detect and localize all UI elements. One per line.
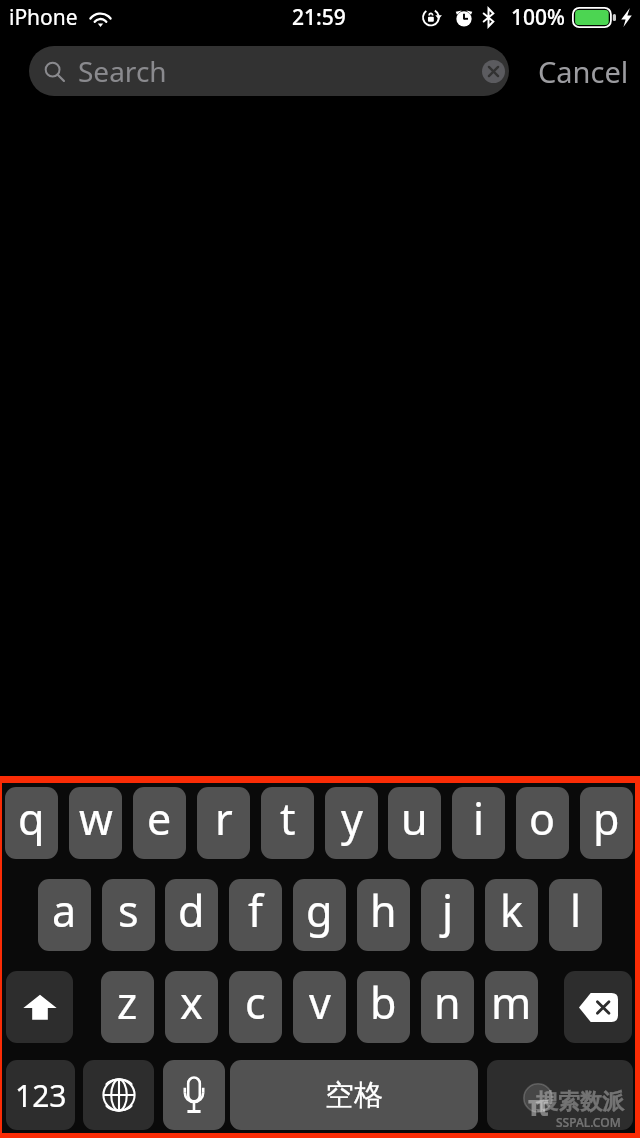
staticText: b [370,973,397,1032]
staticText: Search [78,52,167,90]
button[interactable]: Cancel [538,52,629,91]
staticText: SSPAL.COM [556,1114,621,1130]
staticText: w [79,789,113,848]
staticText: p [593,789,620,848]
button[interactable]: m [485,971,538,1043]
staticText: k [500,881,523,940]
button[interactable]: y [325,787,378,859]
staticText: Cancel [538,52,629,91]
button[interactable]: z [101,971,154,1043]
button[interactable]: 空格 [230,1060,478,1130]
button[interactable]: Shift [6,971,73,1043]
staticText: v [309,973,331,1032]
button[interactable]: s [102,879,155,951]
button[interactable]: Search [487,1060,633,1130]
staticText: z [117,973,138,1032]
staticText: j [442,881,454,940]
button[interactable]: k [485,879,538,951]
button[interactable]: 123 [6,1060,75,1130]
staticText: iPhone [9,3,78,32]
staticText: y [341,789,363,848]
button[interactable]: r [197,787,250,859]
button[interactable]: c [229,971,282,1043]
staticText: 搜索数派 [536,1088,624,1116]
button[interactable]: Clear text [472,50,509,92]
button[interactable]: a [38,879,91,951]
button[interactable]: p [580,787,633,859]
staticText: l [570,881,582,940]
staticText: 21:59 [292,3,346,32]
button[interactable]: Backspace [564,971,632,1043]
staticText: n [434,973,461,1032]
button[interactable]: Dictation [163,1060,225,1130]
button[interactable]: g [293,879,346,951]
staticText: 123 [15,1075,67,1116]
staticText: i [473,789,485,848]
button[interactable]: o [516,787,569,859]
button[interactable]: e [133,787,186,859]
staticText: π [528,1086,549,1124]
button[interactable]: h [357,879,410,951]
button[interactable]: b [357,971,410,1043]
staticText: 空格 [325,1077,383,1114]
staticText: c [245,973,266,1032]
staticText: u [401,789,428,848]
staticText: 100% [511,3,565,32]
staticText: q [18,789,45,848]
button[interactable]: j [421,879,474,951]
button[interactable]: d [165,879,218,951]
staticText: g [306,881,333,940]
staticText: t [280,789,296,848]
button[interactable]: u [388,787,441,859]
staticText: o [529,789,556,848]
staticText: h [370,881,397,940]
button[interactable]: q [5,787,58,859]
staticText: m [491,973,532,1032]
staticText: d [178,881,205,940]
button[interactable]: f [229,879,282,951]
button[interactable]: l [549,879,602,951]
staticText: a [52,881,77,940]
staticText: r [215,789,233,848]
button[interactable]: x [165,971,218,1043]
staticText: f [248,881,263,940]
staticText: e [147,789,172,848]
button[interactable]: t [261,787,314,859]
button[interactable]: n [421,971,474,1043]
button[interactable]: v [293,971,346,1043]
button[interactable]: Search [29,46,509,96]
button[interactable]: i [452,787,505,859]
staticText: x [180,973,203,1032]
staticText: s [118,881,139,940]
button[interactable]: Change keyboard [83,1060,154,1130]
button[interactable]: w [69,787,122,859]
